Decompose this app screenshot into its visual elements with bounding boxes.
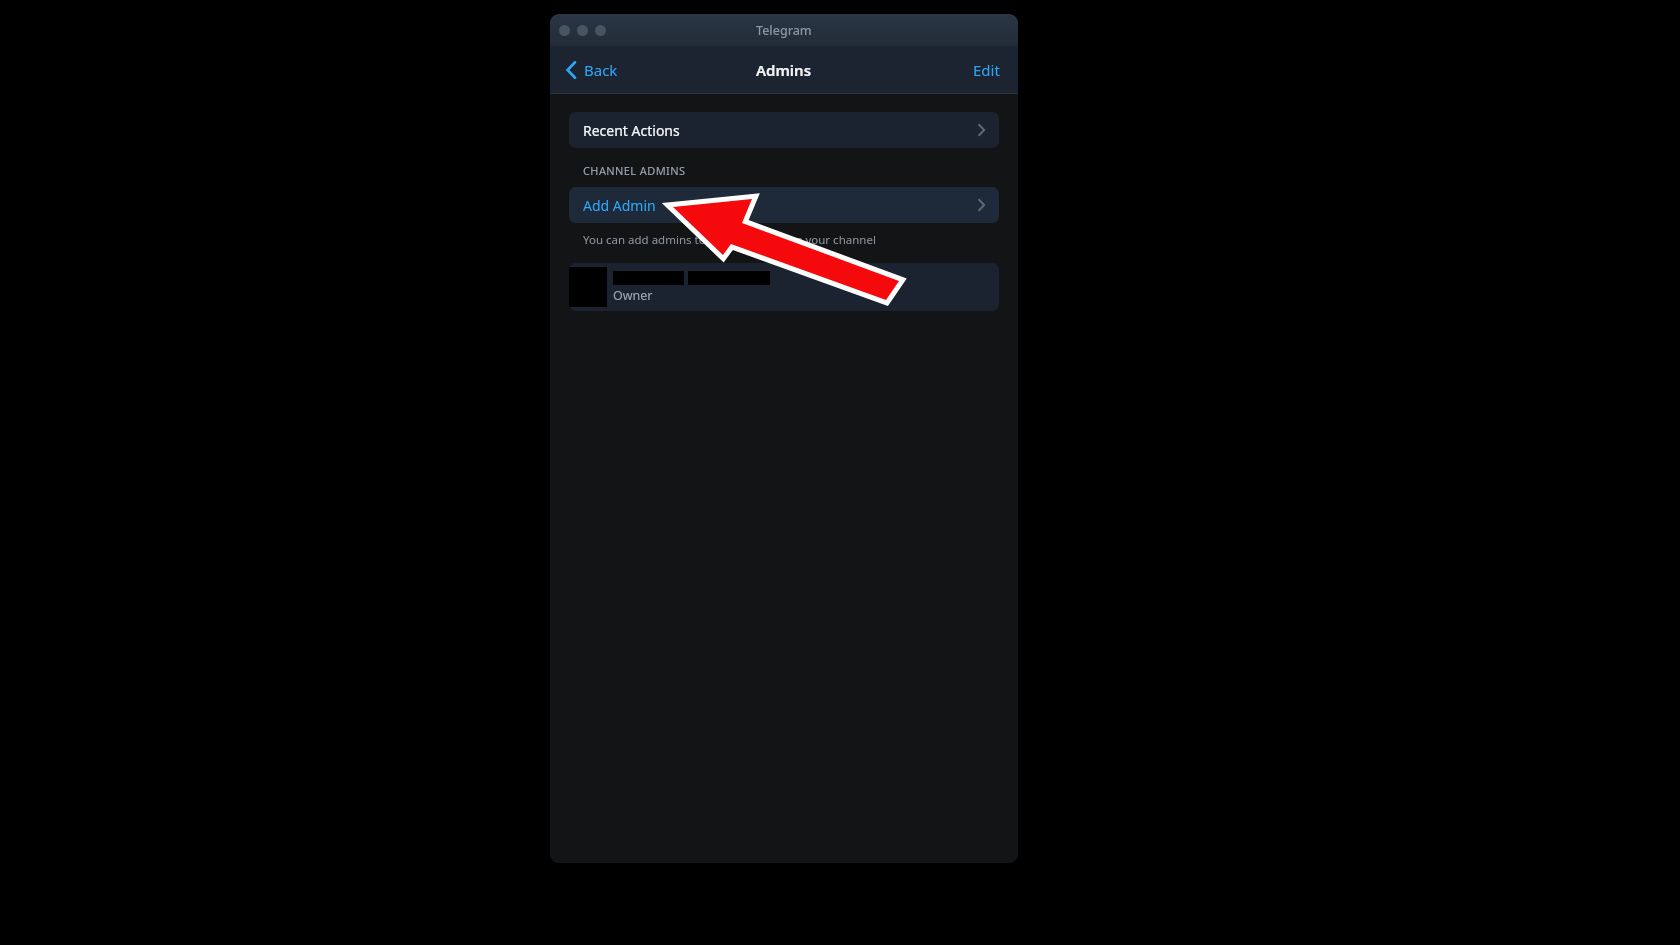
button[interactable]: Edit <box>968 53 1005 87</box>
button[interactable]: Add Admin <box>569 187 999 223</box>
staticText: CHANNEL ADMINS <box>583 163 686 178</box>
button[interactable]: Zoom <box>595 25 606 36</box>
button[interactable]: Recent Actions <box>569 112 999 148</box>
staticText: Admins <box>756 60 812 80</box>
staticText: You can add admins to help you manage yo… <box>583 232 876 248</box>
button[interactable]: Back <box>562 54 626 86</box>
staticText: Recent Actions <box>583 121 680 140</box>
button[interactable]: Minimize <box>577 25 588 36</box>
button[interactable]: Owner <box>569 263 999 311</box>
button[interactable]: Close <box>559 25 570 36</box>
staticText: Owner <box>613 287 653 304</box>
staticText: Telegram <box>756 22 812 39</box>
staticText: Add Admin <box>583 196 656 215</box>
staticText: Back <box>584 60 618 80</box>
staticText: Edit <box>973 60 1000 80</box>
